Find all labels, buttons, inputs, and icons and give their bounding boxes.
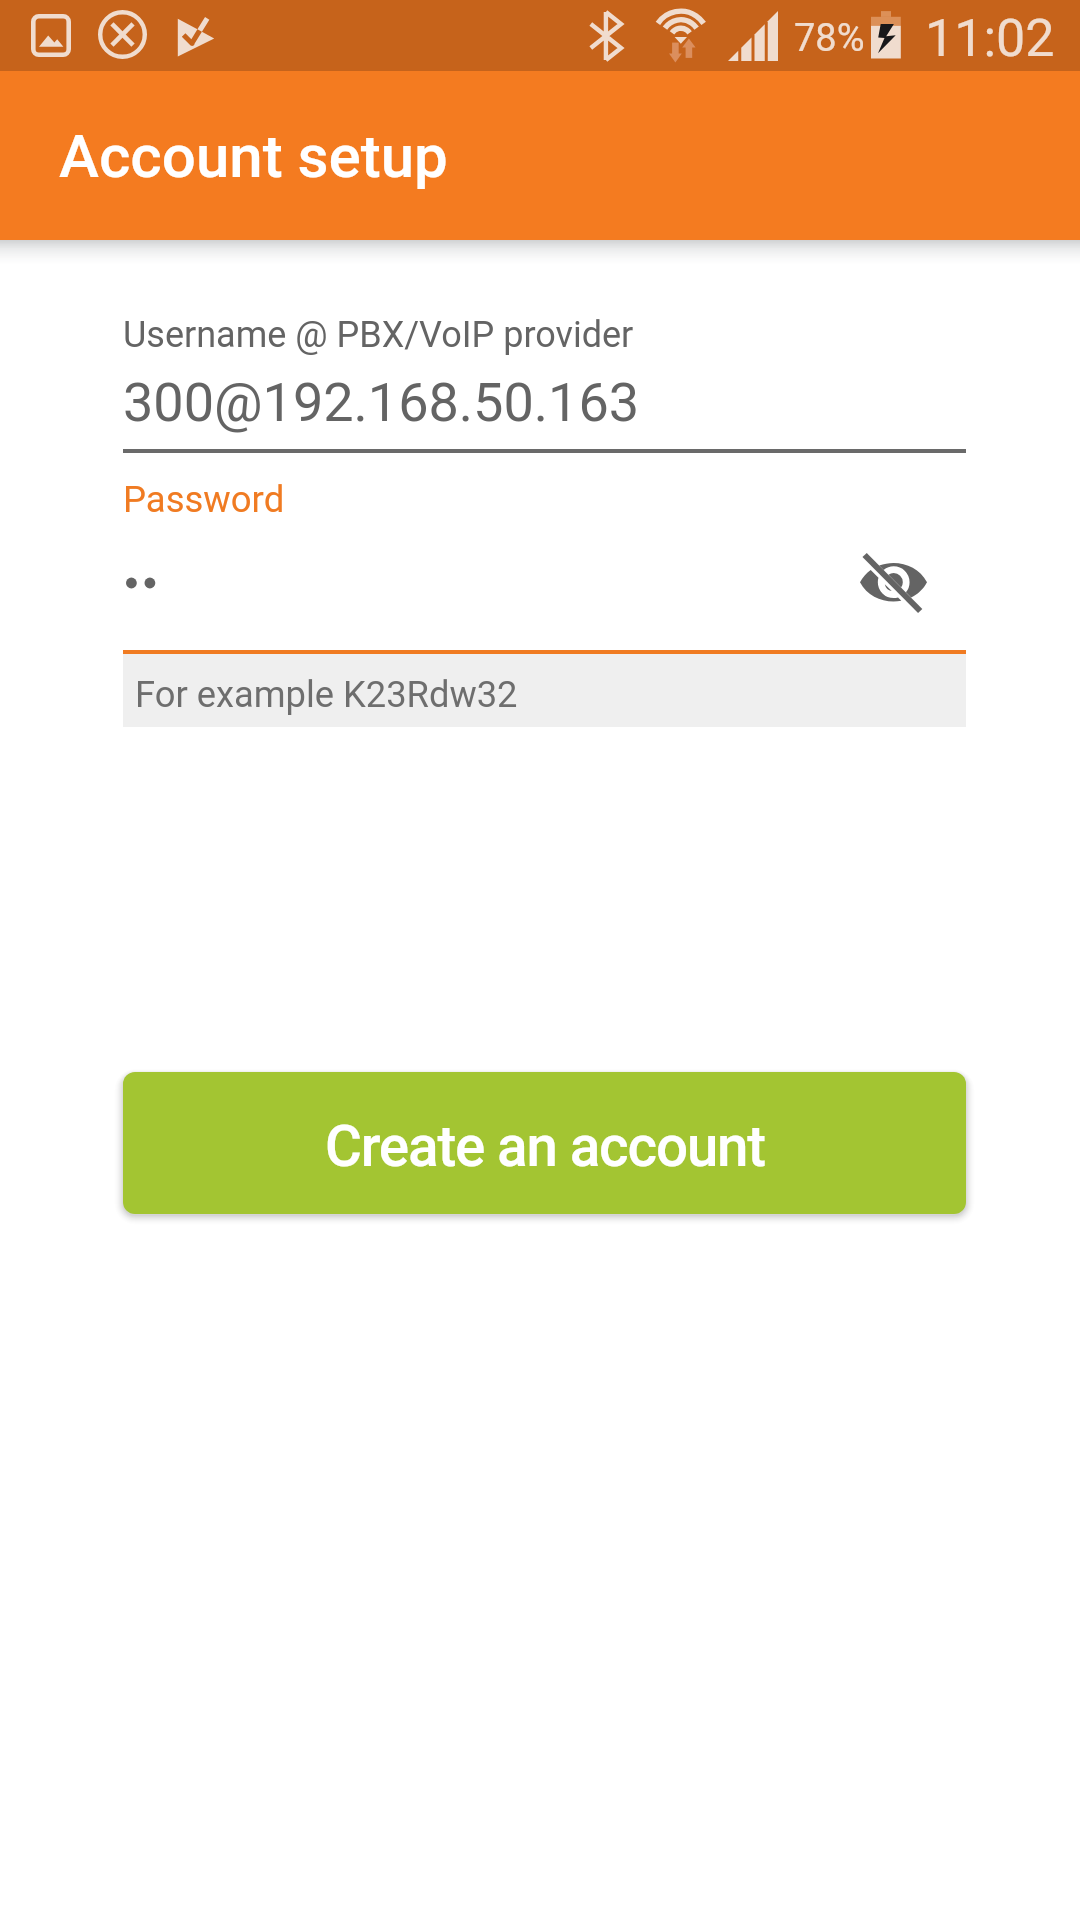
staticText: 300@192.168.50.163 [123,371,640,434]
staticText: 11:02 [925,8,1055,69]
staticText: 78% [794,16,865,61]
button[interactable]: Show password [847,540,941,625]
button[interactable]: Create an account [123,1072,966,1214]
staticText: For example K23Rdw32 [135,673,518,716]
staticText: Account setup [59,121,448,191]
staticText: Create an account [325,1114,765,1180]
staticText: Username @ PBX/VoIP provider [123,314,634,356]
staticText: Password [123,478,285,521]
